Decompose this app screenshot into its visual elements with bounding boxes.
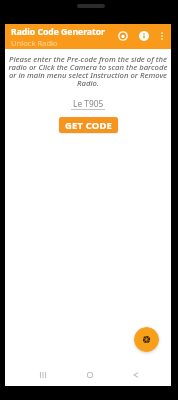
button[interactable]: More options: [155, 29, 168, 42]
button[interactable]: Information: [137, 29, 151, 43]
button[interactable]: Home: [81, 366, 99, 384]
staticText: Please enter the Pre-code from the side …: [7, 54, 169, 88]
button[interactable]: Credits: [116, 29, 130, 43]
button[interactable]: GET CODE: [59, 117, 118, 133]
staticText: GET CODE: [65, 119, 112, 132]
staticText: Le T905: [73, 98, 104, 109]
button[interactable]: Scan barcode with camera: [134, 327, 159, 352]
button[interactable]: Back: [127, 366, 145, 384]
button[interactable]: Recent apps: [34, 366, 52, 384]
staticText: Radio Code Generator: [11, 26, 105, 38]
staticText: Unlock Radio: [11, 38, 58, 48]
